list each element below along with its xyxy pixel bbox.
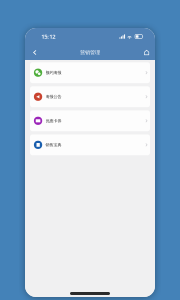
button[interactable]: 海报公告: [30, 86, 150, 107]
button[interactable]: 预约海报: [30, 62, 150, 83]
staticText: 海报公告: [46, 94, 62, 99]
staticText: 营销管理: [80, 49, 100, 56]
button[interactable]: 优惠卡券: [30, 110, 150, 131]
button[interactable]: Back: [30, 46, 40, 58]
staticText: 15:12: [41, 32, 55, 40]
button[interactable]: Home: [141, 47, 152, 58]
staticText: 预约海报: [46, 70, 62, 75]
button[interactable]: 销售宝典: [30, 134, 150, 155]
staticText: 销售宝典: [46, 142, 62, 147]
staticText: 优惠卡券: [46, 118, 62, 123]
